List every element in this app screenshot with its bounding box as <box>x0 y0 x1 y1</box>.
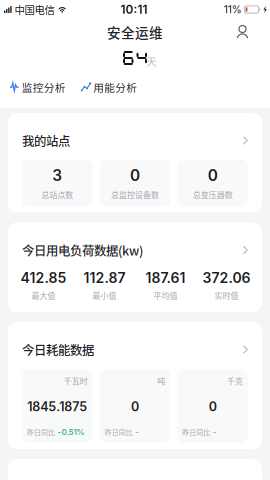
staticText: 0 <box>131 399 139 414</box>
staticText: - <box>135 427 139 437</box>
staticText: 昨日同比 <box>105 427 133 437</box>
staticText: 安全运维 <box>107 22 163 42</box>
staticText: 最大值 <box>31 289 55 301</box>
staticText: 千瓦时 <box>64 375 88 387</box>
staticText: 187.61 <box>145 269 185 286</box>
staticText: 今日用电负荷数据(kw) <box>22 241 143 259</box>
staticText: 千克 <box>227 375 243 387</box>
staticText: 昨日同比 <box>27 427 55 437</box>
staticText: -0.51% <box>57 427 84 437</box>
staticText: 412.85 <box>20 269 66 286</box>
staticText: 总站点数 <box>41 189 73 200</box>
staticText: 372.06 <box>202 269 250 286</box>
staticText: 吨 <box>157 375 165 387</box>
staticText: 最小值 <box>92 289 116 301</box>
button[interactable]: 今日耗能数据 <box>8 322 262 369</box>
staticText: 总监控设备数 <box>111 189 159 200</box>
button[interactable]: 个人中心 <box>226 20 270 43</box>
button[interactable]: 我的站点 <box>8 113 262 160</box>
staticText: 0 <box>130 166 140 185</box>
staticText: 监控分析 <box>22 79 66 95</box>
staticText: 用能分析 <box>93 79 137 95</box>
staticText: 天 <box>146 54 156 68</box>
staticText: 中国电信 <box>15 2 55 17</box>
staticText: 总变压器数 <box>193 189 233 200</box>
button[interactable]: 用能分析 <box>81 79 137 95</box>
staticText: 10:11 <box>120 2 147 17</box>
staticText: 0 <box>209 399 217 414</box>
staticText: 0 <box>208 166 218 185</box>
button[interactable]: 监控分析 <box>10 79 66 95</box>
staticText: 1845.1875 <box>27 399 87 414</box>
staticText: 3 <box>52 166 62 185</box>
staticText: 11% <box>224 3 242 16</box>
staticText: 今日耗能数据 <box>22 340 94 358</box>
staticText: 我的站点 <box>22 131 70 149</box>
button[interactable]: 今日用电负荷数据(kw) <box>8 222 262 269</box>
staticText: 平均值 <box>153 289 177 301</box>
staticText: 112.87 <box>83 269 125 286</box>
staticText: 实时值 <box>214 289 238 301</box>
staticText: - <box>213 427 217 437</box>
staticText: 昨日同比 <box>182 427 210 437</box>
